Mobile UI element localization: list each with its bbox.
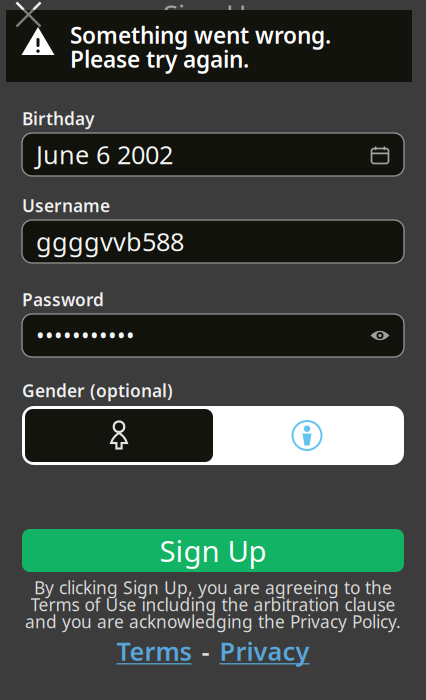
staticText: Privacy	[219, 634, 309, 668]
button[interactable]: Show password	[370, 327, 390, 343]
staticText: Username	[22, 194, 110, 217]
staticText: Terms	[116, 634, 191, 668]
staticText: Gender (optional)	[22, 379, 173, 402]
staticText: and you are acknowledging the Privacy Po…	[25, 610, 401, 633]
button[interactable]: Male	[213, 409, 401, 462]
staticText: ggggvvb588	[36, 225, 184, 258]
button[interactable]: Birthday	[22, 133, 404, 176]
staticText: June 6 2002	[36, 138, 173, 171]
button[interactable]: Close	[0, 0, 42, 28]
staticText: Something went wrong.	[70, 20, 331, 50]
staticText: Password	[22, 288, 104, 311]
staticText: By clicking Sign Up, you are agreeing to…	[34, 576, 392, 599]
button[interactable]: Sign Up	[22, 529, 404, 572]
button[interactable]: Female	[25, 409, 213, 462]
staticText: Sign Up	[159, 531, 266, 570]
button[interactable]: Terms	[116, 634, 191, 668]
staticText: •••••••••••	[36, 320, 135, 350]
staticText: Birthday	[22, 107, 94, 130]
button[interactable]: Privacy	[219, 634, 309, 668]
staticText: Sign Up	[163, 0, 263, 33]
staticText: Terms of Use including the arbitration c…	[30, 593, 395, 616]
staticText: -	[201, 634, 209, 668]
staticText: Please try again.	[70, 44, 249, 74]
